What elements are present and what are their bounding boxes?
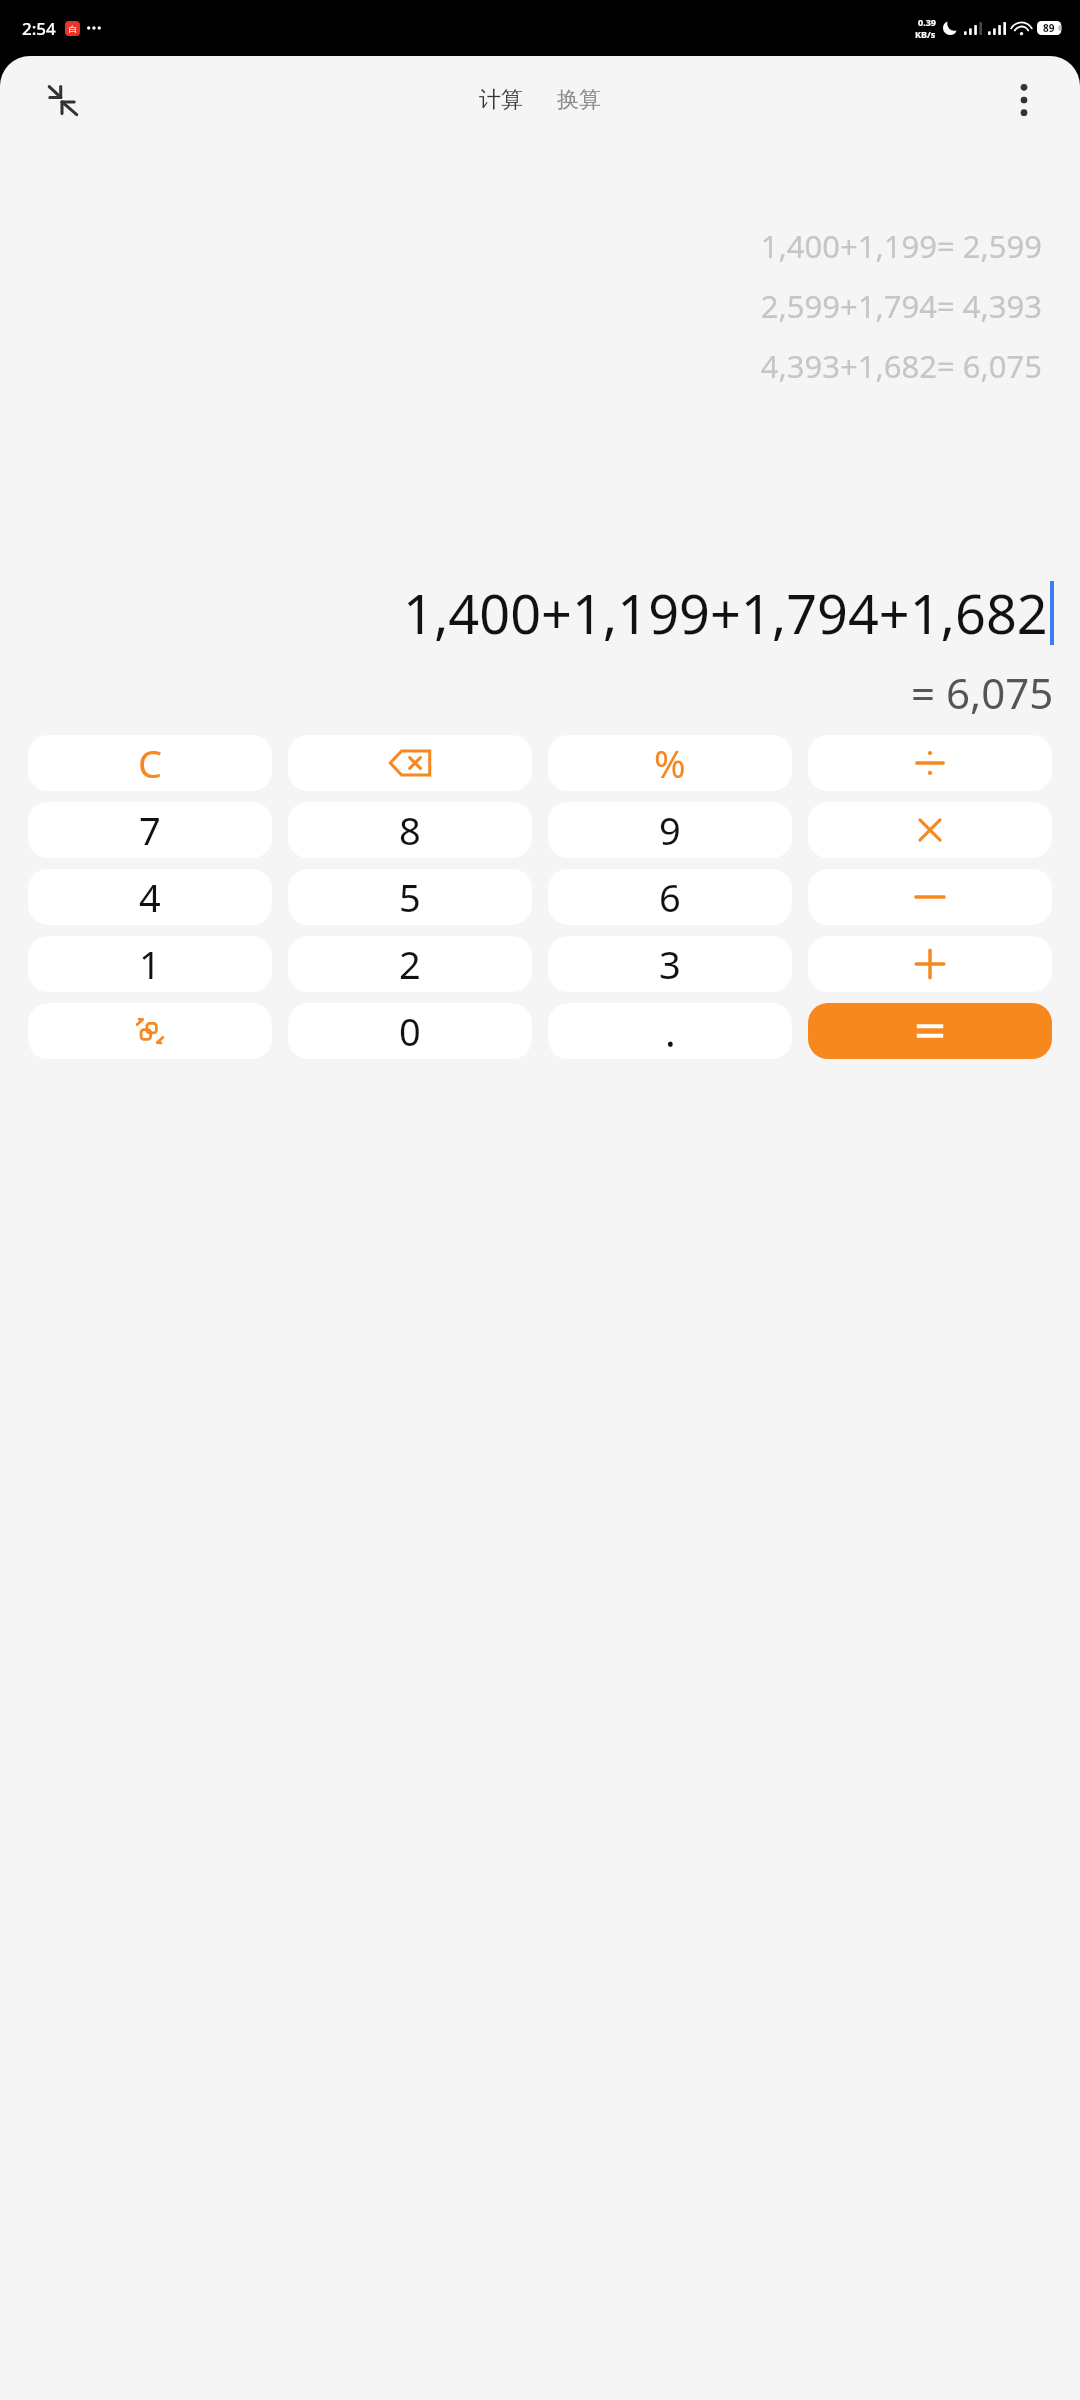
- button[interactable]: 9: [548, 802, 792, 858]
- button[interactable]: Equals: [808, 1003, 1052, 1059]
- button[interactable]: 2: [288, 936, 532, 992]
- staticText: 1: [139, 938, 161, 990]
- staticText: 0: [399, 1005, 421, 1057]
- button[interactable]: 2,599+1,794= 4,393: [760, 276, 1042, 336]
- staticText: 1,400+1,199+1,794+1,682: [403, 576, 1048, 650]
- staticText: 5: [399, 871, 421, 923]
- staticText: 3: [659, 938, 681, 990]
- button[interactable]: 8: [288, 802, 532, 858]
- staticText: %: [654, 737, 686, 789]
- button[interactable]: 6: [548, 869, 792, 925]
- button[interactable]: %: [548, 735, 792, 791]
- staticText: 4: [139, 871, 161, 923]
- staticText: 1,400+1,199= 2,599: [760, 225, 1042, 267]
- button[interactable]: 3: [548, 936, 792, 992]
- button[interactable]: C: [28, 735, 272, 791]
- staticText: 4,393+1,682= 6,075: [760, 345, 1042, 387]
- button[interactable]: Minus: [808, 869, 1052, 925]
- button[interactable]: 4: [28, 869, 272, 925]
- button[interactable]: 计算: [469, 78, 533, 122]
- button[interactable]: Convert: [28, 1003, 272, 1059]
- button[interactable]: 0: [288, 1003, 532, 1059]
- button[interactable]: .: [548, 1003, 792, 1059]
- button[interactable]: 7: [28, 802, 272, 858]
- staticText: 2: [399, 938, 421, 990]
- staticText: 白: [69, 24, 77, 34]
- staticText: .: [665, 1004, 676, 1058]
- staticText: 2:54: [22, 17, 56, 40]
- staticText: 0.39: [918, 16, 936, 28]
- staticText: KB/s: [915, 28, 936, 40]
- button[interactable]: Plus: [808, 936, 1052, 992]
- button[interactable]: 5: [288, 869, 532, 925]
- staticText: = 6,075: [911, 664, 1054, 721]
- staticText: 换算: [557, 86, 601, 114]
- staticText: 计算: [479, 86, 523, 114]
- button[interactable]: 1,400+1,199= 2,599: [760, 216, 1042, 276]
- button[interactable]: Divide: [808, 735, 1052, 791]
- button[interactable]: 换算: [547, 78, 611, 122]
- button[interactable]: More options: [996, 72, 1052, 128]
- button[interactable]: 1: [28, 936, 272, 992]
- staticText: 7: [139, 804, 161, 856]
- button[interactable]: Multiply: [808, 802, 1052, 858]
- button[interactable]: Backspace: [288, 735, 532, 791]
- staticText: 89: [1043, 21, 1055, 35]
- staticText: 2,599+1,794= 4,393: [760, 285, 1042, 327]
- button[interactable]: Collapse: [34, 72, 90, 128]
- staticText: C: [138, 737, 163, 789]
- staticText: 9: [659, 804, 681, 856]
- staticText: 8: [399, 804, 421, 856]
- button[interactable]: 4,393+1,682= 6,075: [760, 336, 1042, 396]
- staticText: 6: [659, 871, 681, 923]
